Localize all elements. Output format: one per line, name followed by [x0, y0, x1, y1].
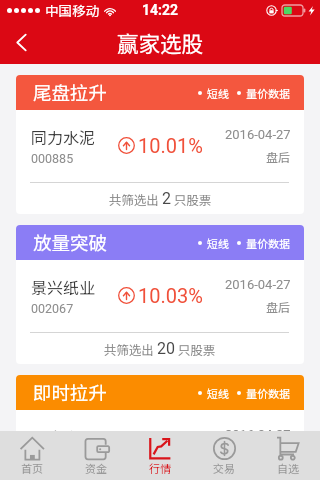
staticText: 2016-04-27: [225, 427, 291, 442]
staticText: 短线: [207, 85, 229, 101]
staticText: 2016-04-27: [225, 127, 291, 142]
button[interactable]: 尾盘拉升: [16, 75, 304, 214]
button[interactable]: Back: [0, 20, 42, 64]
staticText: 自选: [277, 460, 299, 476]
staticText: 000885: [31, 151, 74, 166]
staticText: 盘后: [266, 448, 291, 465]
staticText: 资金: [85, 460, 107, 476]
staticText: 14:22: [142, 2, 179, 18]
staticText: 盘后: [266, 148, 291, 165]
staticText: 共筛选出: [104, 340, 157, 358]
staticText: 000860: [31, 451, 74, 466]
staticText: 只股票: [171, 190, 212, 208]
button[interactable]: 交易: [192, 431, 256, 480]
staticText: 交易: [213, 460, 235, 476]
staticText: 002067: [31, 301, 74, 316]
staticText: 2: [162, 189, 171, 208]
staticText: 短线: [207, 235, 229, 251]
staticText: 同力水泥: [31, 125, 96, 148]
button[interactable]: 放量突破: [16, 225, 304, 364]
staticText: 行情: [149, 460, 171, 476]
staticText: 盘后: [266, 298, 291, 315]
staticText: 赢家选股: [117, 27, 204, 58]
staticText: 2016-04-27: [225, 277, 291, 292]
button[interactable]: 首页: [0, 431, 64, 480]
staticText: 顺鑫农业: [31, 425, 96, 448]
staticText: 短线: [207, 385, 229, 401]
button[interactable]: 自选: [256, 431, 320, 480]
staticText: 放量突破: [33, 229, 108, 256]
staticText: 10.02%: [138, 434, 203, 457]
staticText: 中国移动: [45, 0, 99, 20]
button[interactable]: 资金: [64, 431, 128, 480]
button[interactable]: 即时拉升: [16, 375, 304, 480]
staticText: 10.03%: [138, 284, 203, 307]
button[interactable]: 行情: [128, 431, 192, 480]
staticText: 量价数据: [246, 85, 290, 101]
staticText: 即时拉升: [33, 379, 108, 406]
staticText: 10.01%: [138, 134, 203, 157]
staticText: 量价数据: [246, 235, 290, 251]
staticText: 20: [157, 339, 175, 358]
staticText: 尾盘拉升: [33, 79, 108, 106]
staticText: 首页: [21, 460, 43, 476]
staticText: 只股票: [175, 340, 216, 358]
staticText: 量价数据: [246, 385, 290, 401]
staticText: 景兴纸业: [31, 275, 96, 298]
staticText: 共筛选出: [109, 190, 162, 208]
